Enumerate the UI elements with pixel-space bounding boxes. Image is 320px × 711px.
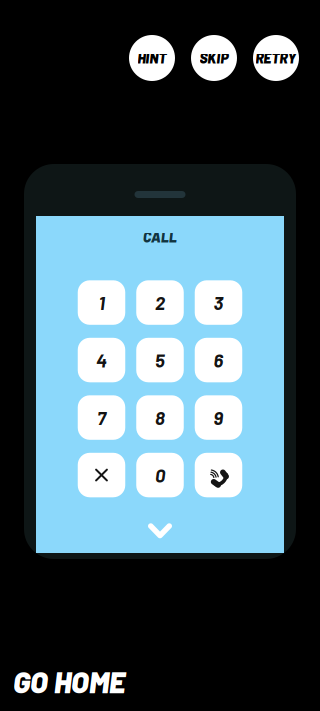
staticText: CALL bbox=[143, 228, 177, 245]
staticText: 4 bbox=[96, 349, 107, 371]
button[interactable]: 5 bbox=[136, 338, 184, 382]
staticText: 3 bbox=[213, 291, 223, 314]
button[interactable]: 2 bbox=[136, 280, 184, 325]
staticText: 1 bbox=[98, 291, 104, 314]
staticText: 7 bbox=[97, 406, 106, 429]
staticText: SKIP bbox=[199, 50, 228, 66]
button[interactable]: 9 bbox=[195, 395, 242, 440]
button[interactable]: 7 bbox=[78, 395, 125, 440]
button[interactable]: 0 bbox=[136, 453, 184, 497]
staticText: HINT bbox=[137, 50, 166, 66]
staticText: 6 bbox=[213, 349, 223, 371]
button[interactable]: 4 bbox=[78, 338, 125, 382]
button[interactable]: HINT bbox=[129, 35, 175, 81]
button[interactable]: 8 bbox=[136, 395, 184, 440]
staticText: 5 bbox=[155, 349, 165, 371]
button[interactable]: GO HOME bbox=[0, 664, 320, 699]
button[interactable]: Call bbox=[195, 453, 242, 497]
staticText: 9 bbox=[213, 406, 223, 429]
staticText: 8 bbox=[155, 406, 165, 429]
staticText: RETRY bbox=[255, 50, 296, 66]
button[interactable]: 3 bbox=[195, 280, 242, 325]
button[interactable]: RETRY bbox=[253, 35, 299, 81]
button[interactable]: 6 bbox=[195, 338, 242, 382]
button[interactable]: SKIP bbox=[191, 35, 237, 81]
staticText: 2 bbox=[155, 291, 165, 314]
button[interactable]: Delete bbox=[78, 453, 125, 497]
staticText: GO HOME bbox=[13, 664, 125, 699]
button[interactable]: Hide keypad bbox=[148, 523, 172, 538]
staticText: 0 bbox=[155, 464, 165, 486]
button[interactable]: 1 bbox=[78, 280, 125, 325]
